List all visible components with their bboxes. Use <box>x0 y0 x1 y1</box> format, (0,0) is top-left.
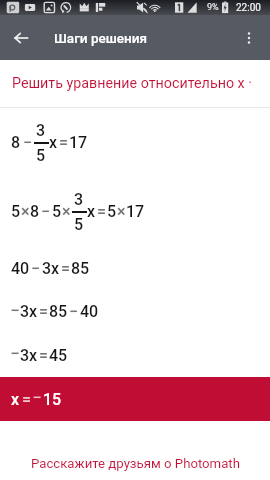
button[interactable]: 5 <box>0 177 270 246</box>
button[interactable]: 40 <box>0 246 270 290</box>
staticText: − <box>69 302 79 321</box>
button[interactable]: 3x <box>0 333 270 377</box>
staticText: Решить уравнение относительно x · <box>12 75 252 92</box>
staticText: − <box>23 133 33 152</box>
staticText: = <box>22 390 31 409</box>
staticText: 17 <box>126 202 145 221</box>
staticText: 5 <box>52 202 62 221</box>
staticText: 5 <box>74 215 84 234</box>
staticText: 85 <box>49 302 68 321</box>
button[interactable]: Back <box>0 17 41 58</box>
staticText: Расскажите друзьям о Photomath <box>31 456 240 471</box>
staticText: Шаги решения <box>54 30 148 46</box>
staticText: 5 <box>107 202 117 221</box>
staticText: = <box>59 133 68 152</box>
button[interactable]: More options <box>231 20 267 56</box>
staticText: x <box>49 133 58 152</box>
staticText: − <box>41 202 51 221</box>
staticText: 17 <box>69 133 88 152</box>
staticText: 8 <box>11 133 21 152</box>
staticText: 3 <box>36 121 46 140</box>
staticText: 8 <box>30 202 40 221</box>
staticText: 40 <box>80 302 99 321</box>
staticText: 22:00 <box>236 2 261 14</box>
staticText: 3x <box>20 346 38 365</box>
button[interactable]: 8 <box>0 108 270 177</box>
staticText: 40 <box>11 259 30 278</box>
staticText: = <box>61 259 70 278</box>
staticText: 3x <box>20 302 38 321</box>
staticText: − <box>31 259 41 278</box>
staticText: 9% <box>207 2 219 13</box>
staticText: 15 <box>43 390 62 409</box>
staticText: 45 <box>49 346 68 365</box>
staticText: = <box>39 346 48 365</box>
button[interactable]: 3x <box>0 290 270 333</box>
staticText: × <box>21 202 30 221</box>
staticText: 3x <box>42 259 60 278</box>
staticText: x <box>87 202 96 221</box>
button[interactable]: Расскажите друзьям о Photomath <box>0 451 270 475</box>
staticText: × <box>117 202 126 221</box>
staticText: x <box>11 390 20 409</box>
staticText: 3 <box>74 190 84 209</box>
staticText: × <box>62 202 71 221</box>
button[interactable]: Решить уравнение относительно x · <box>0 60 270 107</box>
staticText: = <box>39 302 48 321</box>
button[interactable]: x <box>0 377 270 421</box>
staticText: 5 <box>11 202 21 221</box>
staticText: 85 <box>71 259 90 278</box>
staticText: = <box>97 202 106 221</box>
staticText: 5 <box>36 146 46 165</box>
